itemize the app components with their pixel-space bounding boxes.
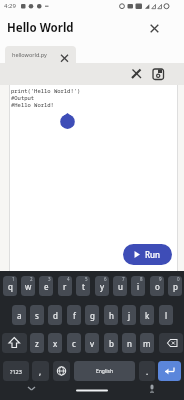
button[interactable] [128,65,146,83]
button[interactable]: . [139,361,155,381]
button[interactable]: s [30,305,44,325]
staticText: m [143,338,151,349]
staticText: 3 [48,276,51,282]
staticText: 1 [12,276,15,282]
staticText: 6 [104,276,107,282]
staticText: print('Hello World!') [11,87,81,94]
button[interactable]: l [159,305,173,325]
button[interactable]: w [21,276,35,296]
staticText: l [165,310,168,321]
button[interactable] [2,333,27,353]
button[interactable]: u [113,276,127,296]
staticText: . [146,366,149,377]
staticText: i [137,281,140,292]
button[interactable]: e [39,276,53,296]
button[interactable]: n [122,333,136,353]
button[interactable] [159,333,183,353]
button[interactable] [144,19,164,39]
button[interactable]: f [67,305,81,325]
staticText: x [53,338,58,349]
staticText: k [145,310,150,321]
button[interactable]: y [95,276,109,296]
button[interactable]: j [122,305,136,325]
staticText: English [96,368,114,375]
staticText: 8 [140,276,143,282]
staticText: 2 [30,276,33,282]
staticText: h [109,310,114,321]
button[interactable]: English [74,361,135,381]
button[interactable]: b [104,333,118,353]
staticText: g [90,310,95,321]
button[interactable]: Run [123,244,172,265]
staticText: f [73,310,76,321]
staticText: a [17,310,22,321]
staticText: 4:29 [4,2,16,10]
button[interactable]: r [58,276,72,296]
button[interactable] [53,361,70,381]
staticText: e [44,281,49,292]
staticText: v [90,338,95,349]
button[interactable]: q [3,276,17,296]
staticText: o [155,281,160,292]
button[interactable]: helloworld.py [5,46,76,63]
button[interactable]: v [85,333,99,353]
button[interactable]: o [150,276,164,296]
staticText: j [128,310,131,321]
button[interactable] [149,65,167,83]
button[interactable]: p [168,276,182,296]
button[interactable]: k [140,305,154,325]
staticText: u [118,281,123,292]
staticText: y [100,281,105,292]
staticText: 9 [159,276,162,282]
staticText: w [25,281,32,292]
staticText: q [8,281,13,292]
staticText: p [173,281,178,292]
button[interactable]: t [76,276,90,296]
staticText: #Hello World! [11,101,54,108]
button[interactable]: g [85,305,99,325]
staticText: Run [145,249,161,260]
staticText: b [109,338,114,349]
button[interactable]: a [12,305,26,325]
button[interactable] [158,361,181,381]
button[interactable]: c [67,333,81,353]
button[interactable]: d [48,305,62,325]
button[interactable]: , [32,361,49,381]
staticText: c [72,338,76,349]
staticText: s [35,310,39,321]
staticText: ?123 [10,368,22,375]
staticText: Hello World [7,20,74,36]
button[interactable]: x [48,333,62,353]
staticText: n [127,338,132,349]
staticText: t [82,281,85,292]
staticText: #Output [11,94,35,101]
staticText: helloworld.py [12,51,47,58]
button[interactable]: i [131,276,145,296]
staticText: d [53,310,58,321]
staticText: , [39,366,42,377]
staticText: z [35,338,39,349]
staticText: r [63,281,67,292]
button[interactable]: ?123 [3,361,29,381]
staticText: 5 [85,276,88,282]
staticText: 7 [122,276,125,282]
staticText: 4 [67,276,70,282]
button[interactable]: z [30,333,44,353]
button[interactable]: h [104,305,118,325]
button[interactable]: m [140,333,154,353]
staticText: 0 [177,276,180,282]
